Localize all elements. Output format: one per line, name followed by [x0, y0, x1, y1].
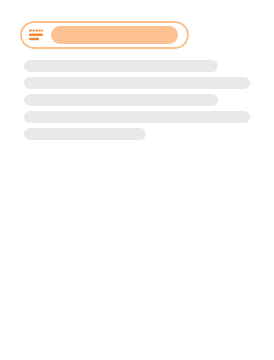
- button[interactable]: [51, 26, 178, 44]
- button[interactable]: Filter: [20, 21, 189, 49]
- button[interactable]: Filter: [29, 28, 43, 42]
